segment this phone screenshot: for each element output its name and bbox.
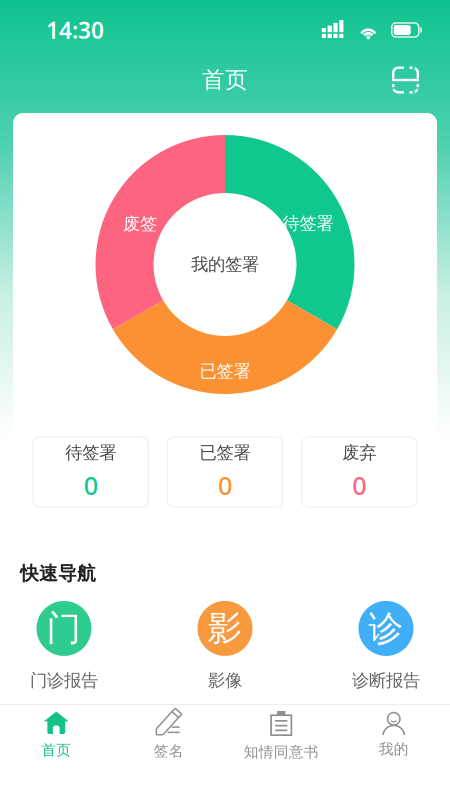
staticText: 首页 <box>202 66 248 94</box>
staticText: 废签 <box>123 213 157 235</box>
staticText: 知情同意书 <box>244 743 319 761</box>
button[interactable]: 首页 <box>0 705 112 765</box>
staticText: 14:30 <box>46 15 104 45</box>
button[interactable]: 诊 <box>342 601 430 691</box>
button[interactable]: 已签署 <box>167 437 283 507</box>
staticText: 我的签署 <box>191 254 259 275</box>
staticText: 影像 <box>208 670 242 691</box>
staticText: 门诊报告 <box>30 670 98 691</box>
staticText: 待签署 <box>282 213 333 234</box>
staticText: 0 <box>84 468 98 502</box>
staticText: 已签署 <box>199 361 250 382</box>
button[interactable]: 待签署 <box>33 437 148 507</box>
staticText: 签名 <box>154 742 184 760</box>
staticText: 0 <box>218 468 232 502</box>
staticText: 诊断报告 <box>352 670 420 691</box>
button[interactable]: 门 <box>20 601 108 691</box>
staticText: 首页 <box>41 741 71 759</box>
staticText: 已签署 <box>199 442 250 463</box>
button[interactable]: 影 <box>181 601 269 691</box>
staticText: 门 <box>46 607 81 650</box>
button[interactable]: 签名 <box>112 705 225 765</box>
staticText: 诊 <box>368 607 403 650</box>
button[interactable]: 知情同意书 <box>225 705 337 765</box>
staticText: 快速导航 <box>20 562 96 585</box>
button[interactable]: 我的 <box>337 705 450 765</box>
staticText: 影 <box>207 607 242 650</box>
staticText: 待签署 <box>65 442 116 463</box>
staticText: 0 <box>352 468 366 502</box>
button[interactable]: 扫一扫 <box>385 59 426 100</box>
staticText: 我的 <box>379 740 409 758</box>
staticText: 废弃 <box>342 442 376 463</box>
button[interactable]: 废弃 <box>302 437 417 507</box>
